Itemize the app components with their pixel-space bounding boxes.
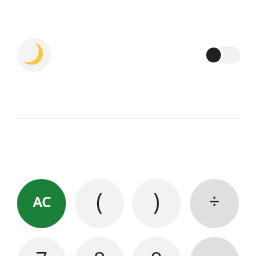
staticText: 8 — [93, 246, 106, 256]
button[interactable]: 7 — [17, 237, 66, 256]
button[interactable]: ( — [75, 179, 124, 228]
staticText: AC — [33, 192, 51, 211]
staticText: ÷ — [209, 188, 220, 214]
staticText: 9 — [150, 246, 163, 256]
button[interactable]: 8 — [75, 237, 124, 256]
button[interactable]: ) — [132, 179, 181, 228]
staticText: ) — [153, 185, 160, 216]
button[interactable]: × — [190, 237, 239, 256]
staticText: ( — [96, 185, 103, 216]
button[interactable]: AC — [17, 179, 66, 228]
button[interactable]: ÷ — [190, 179, 239, 228]
button[interactable]: Toggle theme — [204, 45, 240, 65]
button[interactable]: Dark mode — [17, 38, 51, 72]
staticText: 7 — [35, 246, 48, 256]
button[interactable]: 9 — [132, 237, 181, 256]
